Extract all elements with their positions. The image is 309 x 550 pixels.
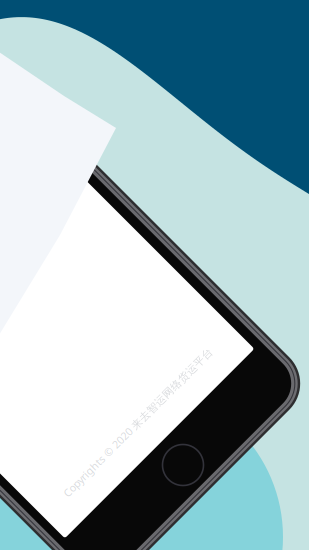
staticText: Copyrights © 2020 来去智运网络货运平台 xyxy=(35,415,241,429)
